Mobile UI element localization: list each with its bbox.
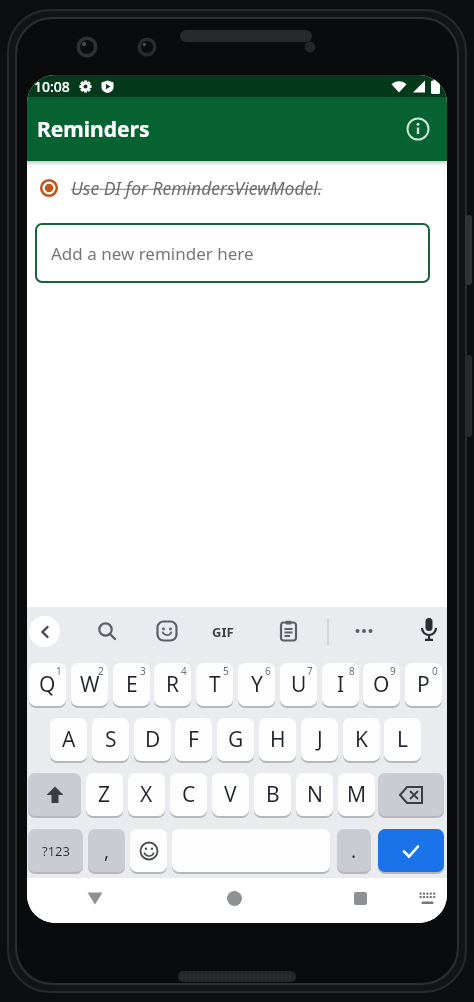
staticText: R	[166, 670, 180, 699]
staticText: E	[126, 670, 138, 699]
staticText: Y	[251, 670, 263, 699]
staticText: ?123	[42, 842, 70, 860]
button[interactable]: T	[196, 663, 233, 706]
button[interactable]: ?123	[28, 829, 83, 872]
button[interactable]	[378, 829, 444, 872]
button[interactable]: G	[217, 718, 254, 761]
button[interactable]: ,	[88, 829, 125, 872]
staticText: L	[397, 725, 409, 754]
button[interactable]: X	[128, 773, 165, 816]
staticText: 2	[98, 664, 104, 678]
staticText: 10:08	[34, 77, 70, 96]
staticText: I	[337, 670, 345, 699]
staticText: S	[105, 725, 117, 754]
button[interactable]: E	[113, 663, 150, 706]
button[interactable]: V	[212, 773, 249, 816]
staticText: K	[355, 725, 368, 754]
staticText: V	[224, 780, 237, 809]
button[interactable]: U	[280, 663, 317, 706]
staticText: 1	[56, 664, 62, 678]
staticText: F	[188, 725, 199, 754]
staticText: X	[140, 780, 153, 809]
button[interactable]	[79, 882, 111, 914]
staticText: C	[182, 780, 196, 809]
staticText: 7	[307, 664, 313, 678]
button[interactable]	[344, 882, 376, 914]
staticText: Reminders	[37, 115, 150, 144]
staticText: 0	[432, 664, 438, 678]
staticText: G	[228, 725, 244, 754]
staticText: 5	[223, 664, 229, 678]
button[interactable]: D	[134, 718, 171, 761]
staticText: W	[80, 670, 100, 699]
button[interactable]: C	[170, 773, 207, 816]
button[interactable]	[413, 884, 441, 912]
staticText: J	[317, 725, 323, 754]
staticText: N	[307, 780, 323, 809]
button[interactable]: I	[322, 663, 359, 706]
button[interactable]	[218, 882, 250, 914]
button[interactable]	[378, 773, 444, 816]
staticText: Q	[39, 670, 56, 699]
button[interactable]	[28, 773, 81, 816]
button[interactable]: A	[50, 718, 87, 761]
button[interactable]: Z	[86, 773, 123, 816]
staticText: A	[62, 725, 76, 754]
button[interactable]: Y	[238, 663, 275, 706]
staticText: Add a new reminder here	[51, 242, 254, 265]
button[interactable]: Use DI for RemindersViewModel.	[27, 169, 447, 207]
staticText: Use DI for RemindersViewModel.	[71, 176, 323, 200]
staticText: GIF	[212, 623, 234, 641]
staticText: D	[145, 725, 161, 754]
staticText: T	[209, 670, 221, 699]
button[interactable]: N	[296, 773, 333, 816]
staticText: ,	[104, 838, 110, 864]
staticText: 9	[390, 664, 396, 678]
staticText: Z	[98, 780, 111, 809]
button[interactable]: M	[338, 773, 375, 816]
staticText: U	[291, 670, 307, 699]
button[interactable]: S	[92, 718, 129, 761]
button[interactable]: F	[175, 718, 212, 761]
button[interactable]: H	[259, 718, 296, 761]
button[interactable]: W	[71, 663, 108, 706]
button[interactable]	[156, 620, 178, 642]
button[interactable]: .	[337, 829, 371, 872]
button[interactable]	[130, 829, 167, 872]
button[interactable]: P	[405, 663, 442, 706]
button[interactable]	[404, 115, 432, 143]
button[interactable]	[172, 829, 330, 872]
button[interactable]	[419, 617, 439, 645]
staticText: 6	[265, 664, 271, 678]
staticText: 8	[349, 664, 355, 678]
staticText: B	[266, 780, 280, 809]
staticText: 4	[181, 664, 187, 678]
button[interactable]: Add a new reminder here	[35, 223, 430, 283]
staticText: H	[270, 725, 286, 754]
button[interactable]: Q	[29, 663, 66, 706]
staticText: .	[351, 838, 357, 864]
button[interactable]: O	[363, 663, 400, 706]
staticText: O	[373, 670, 390, 699]
button[interactable]: GIF	[212, 623, 234, 641]
staticText: 3	[140, 664, 146, 678]
button[interactable]	[353, 620, 375, 642]
staticText: P	[417, 670, 430, 699]
button[interactable]	[96, 620, 118, 642]
button[interactable]: J	[301, 718, 338, 761]
button[interactable]: B	[254, 773, 291, 816]
button[interactable]	[278, 620, 299, 641]
button[interactable]: L	[384, 718, 421, 761]
button[interactable]: R	[154, 663, 191, 706]
staticText: M	[347, 780, 367, 809]
button[interactable]: K	[343, 718, 380, 761]
button[interactable]	[29, 616, 60, 647]
